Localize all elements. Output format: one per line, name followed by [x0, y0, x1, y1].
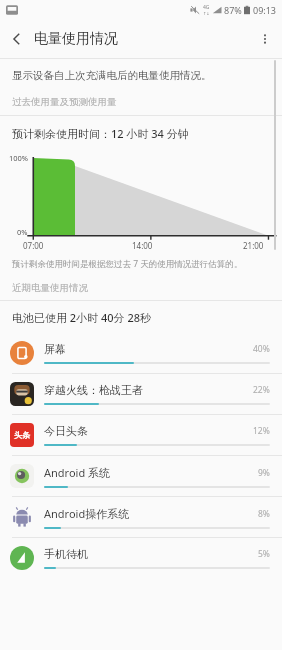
staticText: 电量使用情况 [34, 30, 118, 48]
button[interactable]: More options [248, 22, 282, 56]
staticText: 头条 [14, 430, 30, 440]
button[interactable]: 头条 [0, 415, 282, 455]
staticText: 09:13 [253, 4, 277, 16]
staticText: Android操作系统 [44, 506, 130, 521]
staticText: 近期电量使用情况 [12, 282, 88, 294]
staticText: 8% [258, 508, 270, 520]
staticText: 穿越火线：枪战王者 [44, 383, 143, 397]
staticText: 今日头条 [44, 424, 88, 438]
staticText: 屏幕 [44, 342, 66, 356]
staticText: 预计剩余使用时间：12 小时 34 分钟 [12, 126, 189, 141]
staticText: 12% [253, 425, 270, 437]
staticText: 14:00 [132, 240, 153, 251]
staticText: 4G [203, 4, 210, 11]
staticText: 预计剩余使用时间是根据您过去 7 天的使用情况进行估算的。 [12, 258, 243, 270]
staticText: ↑↓ [203, 11, 210, 16]
staticText: 07:00 [23, 240, 44, 251]
button[interactable]: Android 系统 [0, 456, 282, 496]
button[interactable]: 手机待机 [0, 538, 282, 578]
staticText: 过去使用量及预测使用量 [12, 96, 117, 108]
button[interactable]: Android操作系统 [0, 497, 282, 537]
staticText: 100% [9, 153, 29, 163]
button[interactable]: 穿越火线：枪战王者 [0, 374, 282, 414]
staticText: 40% [253, 343, 270, 355]
button[interactable]: 电量使用情况 [34, 30, 118, 48]
staticText: Android 系统 [44, 465, 111, 480]
staticText: 手机待机 [44, 547, 88, 561]
staticText: 9% [258, 467, 270, 479]
staticText: 87% [224, 4, 242, 16]
staticText: 显示设备自上次充满电后的电量使用情况。 [12, 69, 212, 82]
staticText: 5% [258, 548, 270, 560]
staticText: 22% [253, 384, 270, 396]
staticText: 21:00 [243, 240, 264, 251]
button[interactable]: Back [0, 22, 34, 56]
staticText: 电池已使用 2小时 40分 28秒 [12, 310, 152, 325]
staticText: 0% [17, 227, 28, 237]
button[interactable]: 屏幕 [0, 333, 282, 373]
